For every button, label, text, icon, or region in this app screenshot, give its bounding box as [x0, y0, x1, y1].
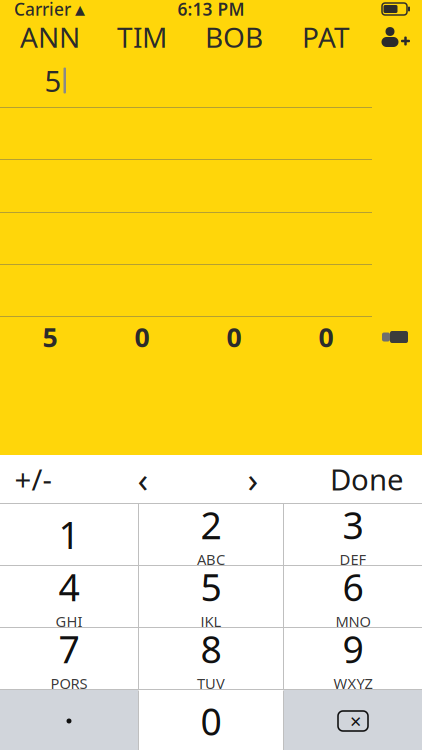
staticText: MNO [335, 611, 370, 631]
staticText: 0 [226, 319, 241, 355]
staticText: PQRS [50, 673, 87, 693]
staticText: 0 [134, 319, 149, 355]
staticText: 2 [200, 500, 221, 550]
staticText: TUV [197, 673, 225, 693]
staticText: Carrier [14, 0, 71, 20]
button[interactable]: ANN [4, 20, 96, 54]
button[interactable]: +/- [0, 455, 66, 503]
button[interactable]: 9 [284, 628, 422, 689]
staticText: › [247, 456, 258, 502]
button[interactable]: TIM [96, 20, 188, 54]
staticText: × [350, 708, 361, 734]
staticText: ▴ [75, 0, 85, 20]
staticText: 5 [44, 61, 61, 100]
button[interactable]: 8 [139, 628, 283, 689]
staticText: +/- [14, 459, 51, 498]
staticText: 1 [58, 510, 79, 559]
button[interactable]: 5 [139, 566, 283, 627]
button[interactable]: BOB [188, 20, 280, 54]
button[interactable]: Previous [116, 455, 170, 503]
staticText: DEF [339, 549, 366, 569]
staticText: 0 [318, 319, 333, 355]
staticText: TIM [117, 18, 167, 56]
button[interactable]: Erase [372, 323, 418, 351]
staticText: Done [330, 459, 404, 498]
staticText: 5 [42, 319, 57, 355]
button[interactable]: Done [330, 455, 422, 503]
button[interactable]: Next [226, 455, 280, 503]
button[interactable]: Add player [372, 20, 418, 54]
button[interactable]: PAT [280, 20, 372, 54]
button[interactable]: 4 [0, 566, 138, 627]
staticText: PAT [302, 18, 350, 56]
button[interactable]: 7 [0, 628, 138, 689]
staticText: WXYZ [333, 673, 372, 693]
staticText: 5 [200, 562, 221, 612]
button[interactable]: 3 [284, 504, 422, 565]
staticText: ABC [197, 549, 225, 569]
button[interactable]: 1 [0, 504, 138, 565]
staticText: 3 [342, 500, 363, 550]
button[interactable]: 0 [139, 690, 283, 750]
button[interactable]: Delete [284, 690, 422, 750]
staticText: 7 [58, 624, 79, 674]
staticText: 6 [342, 562, 363, 612]
staticText: 9 [342, 624, 363, 674]
staticText: JKL [200, 611, 221, 631]
staticText: 4 [58, 562, 79, 612]
staticText: 8 [200, 624, 221, 674]
button[interactable]: Decimal point [0, 690, 138, 750]
button[interactable]: 2 [139, 504, 283, 565]
staticText: 0 [200, 696, 221, 746]
staticText: ‹ [137, 456, 148, 502]
staticText: GHI [55, 611, 82, 631]
staticText: ANN [20, 18, 80, 56]
staticText: BOB [205, 18, 263, 56]
staticText: 6:13 PM [177, 0, 244, 20]
button[interactable]: 6 [284, 566, 422, 627]
